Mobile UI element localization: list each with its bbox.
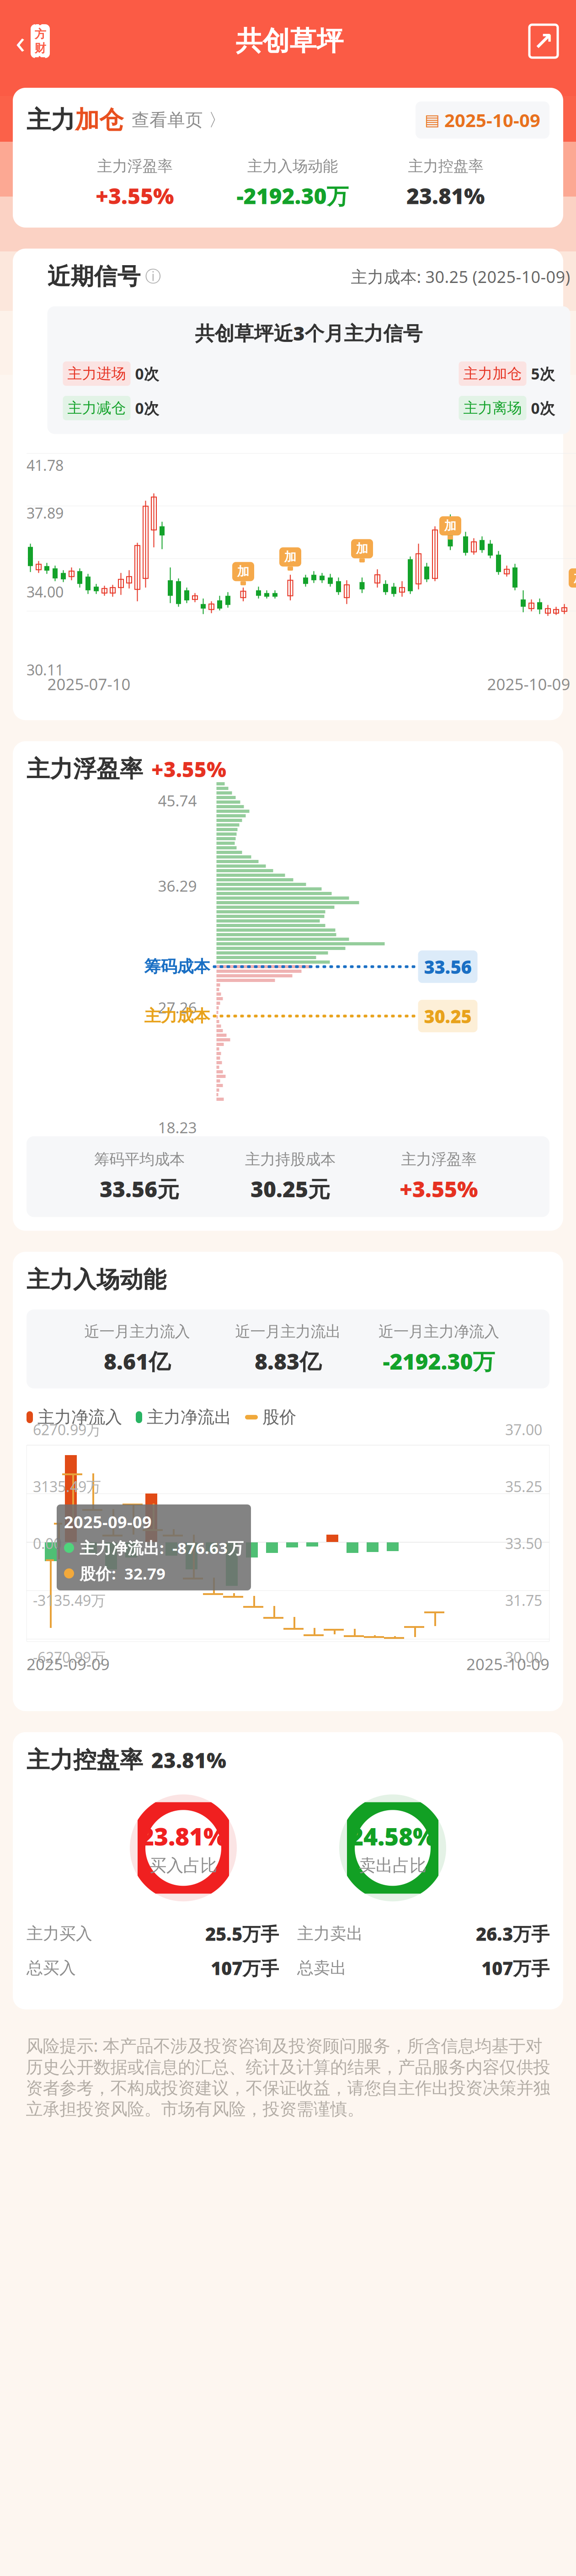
staticText: 近一月主力流出 (235, 1322, 341, 1341)
staticText: 加 (356, 541, 368, 556)
staticText: 主力进场 (67, 365, 126, 383)
staticText: 东方 财富 (35, 13, 46, 70)
staticText: 8.83亿 (255, 1346, 321, 1376)
staticText: 2025-09-09 (64, 1511, 152, 1533)
staticText: 主力 (27, 105, 75, 135)
staticText: 0次 (135, 398, 159, 418)
staticText: 卖出占比 (359, 1855, 427, 1876)
staticText: 主力净流出 (147, 1407, 231, 1428)
staticText: 0次 (531, 398, 555, 418)
staticText: 35.25 (505, 1477, 542, 1496)
staticText: +3.55% (400, 1174, 478, 1203)
staticText: 30.25元 (251, 1174, 330, 1203)
staticText: 股价 (262, 1407, 296, 1428)
staticText: 3135.49万 (33, 1477, 101, 1496)
staticText: 主力控盘率 (408, 157, 483, 176)
staticText: 5次 (531, 364, 555, 384)
staticText: 25.5万手 (205, 1922, 279, 1946)
staticText: -6270.99万 (33, 1647, 106, 1667)
staticText: 筹码成本 (144, 957, 210, 977)
staticText: 31.75 (505, 1591, 542, 1610)
staticText: 33.50 (505, 1534, 542, 1553)
staticText: -2192.30万 (237, 181, 349, 210)
staticText: 0次 (135, 364, 159, 384)
staticText: 23.81% (151, 1746, 226, 1774)
staticText: 107万手 (481, 1956, 549, 1980)
staticText: 2025-10-09 (487, 674, 570, 695)
staticText: 加 (237, 564, 249, 579)
staticText: 近一月主力流入 (84, 1322, 190, 1341)
staticText: 主力净流出: -876.63万 (80, 1537, 244, 1558)
staticText: 33.56元 (100, 1174, 179, 1203)
staticText: 主力控盘率 (27, 1746, 143, 1774)
staticText: 34.00 (27, 582, 64, 602)
staticText: 2025-09-09 (27, 1653, 110, 1675)
staticText: 主力卖出 (297, 1924, 363, 1944)
staticText: 主力浮盈率 (401, 1150, 477, 1169)
staticText: +3.55% (96, 181, 174, 210)
staticText: 23.81% (406, 181, 485, 210)
staticText: 总卖出 (297, 1958, 347, 1978)
staticText: 主力持股成本 (245, 1150, 336, 1169)
staticText: ⓘ (141, 267, 161, 286)
staticText: 2025-07-10 (47, 674, 131, 695)
staticText: 主力入场动能 (247, 157, 338, 176)
staticText: 加 (284, 549, 296, 564)
staticText: 筹码平均成本 (94, 1150, 185, 1169)
staticText: 23.81% (140, 1820, 227, 1852)
staticText: 风险提示: 本产品不涉及投资咨询及投资顾问服务，所含信息均基于对历史公开数据或信… (26, 2034, 550, 2120)
button[interactable]: 分享 (529, 25, 576, 58)
staticText: 主力净流入 (37, 1407, 122, 1428)
staticText: 主力入场动能 (27, 1266, 166, 1294)
staticText: 2025-10-09 (444, 108, 540, 132)
staticText: 45.74 (158, 790, 197, 811)
staticText: 30.11 (27, 660, 64, 679)
staticText: 加 (573, 570, 576, 585)
staticText: 近一月主力净流入 (379, 1322, 499, 1341)
staticText: 18.23 (158, 1117, 197, 1137)
staticText: 41.78 (27, 455, 64, 475)
staticText: 0.00 (33, 1534, 62, 1553)
staticText: +3.55% (151, 755, 226, 783)
staticText: 37.00 (505, 1420, 542, 1439)
staticText: 主力离场 (463, 399, 522, 417)
staticText: 33.56 (424, 955, 472, 979)
staticText: 查看单页 〉 (132, 109, 226, 131)
staticText: 近期信号 (47, 262, 141, 291)
staticText: 买入占比 (149, 1855, 217, 1876)
staticText: 37.89 (27, 503, 64, 523)
staticText: 主力成本 (144, 1006, 210, 1026)
staticText: 主力加仓 (463, 365, 522, 383)
staticText: 27.26 (158, 997, 197, 1018)
staticText: 30.00 (505, 1647, 542, 1667)
staticText: 2025-10-09 (466, 1653, 549, 1675)
staticText: 24.58% (349, 1820, 436, 1852)
button[interactable]: 返回 (0, 16, 50, 67)
staticText: 107万手 (211, 1956, 279, 1980)
button[interactable]: 主力 (27, 105, 226, 135)
staticText: 26.3万手 (476, 1922, 549, 1946)
staticText: 共创草坪近3个月主力信号 (195, 320, 423, 346)
staticText: ‹ (16, 20, 25, 62)
button[interactable]: ▤ (416, 101, 549, 139)
staticText: ↗ (533, 27, 554, 55)
staticText: 6270.99万 (33, 1420, 101, 1439)
staticText: 主力浮盈率 (27, 755, 143, 783)
staticText: 总买入 (27, 1958, 76, 1978)
staticText: 主力浮盈率 (97, 157, 173, 176)
staticText: 股价: 32.79 (80, 1563, 165, 1584)
staticText: 主力减仓 (67, 399, 126, 417)
staticText: ▤ (425, 111, 440, 129)
staticText: -2192.30万 (383, 1346, 495, 1376)
staticText: 30.25 (424, 1004, 472, 1028)
staticText: 主力成本: 30.25 (2025-10-09) (351, 266, 570, 287)
staticText: 8.61亿 (104, 1346, 171, 1376)
staticText: 共创草坪 (236, 25, 344, 58)
staticText: 加 (444, 518, 456, 533)
staticText: 加仓 (75, 105, 123, 135)
staticText: -3135.49万 (33, 1591, 106, 1610)
staticText: 主力买入 (27, 1924, 92, 1944)
staticText: 36.29 (158, 876, 197, 896)
